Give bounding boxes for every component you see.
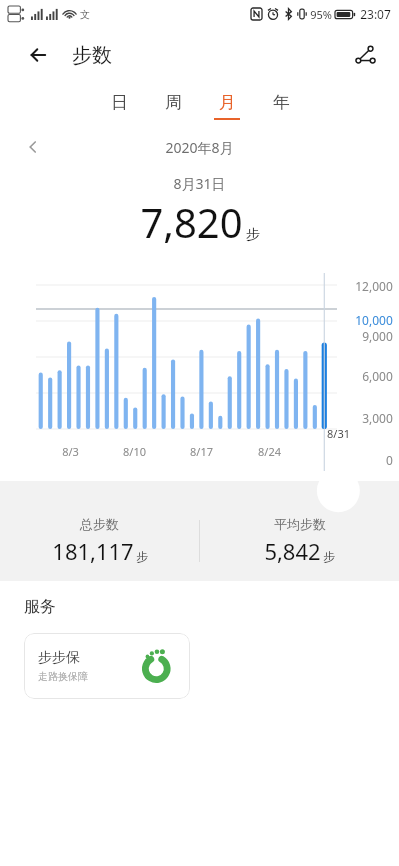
staticText: 6,000 <box>362 368 393 384</box>
staticText: 5,842 <box>264 536 321 566</box>
staticText: 步 <box>323 549 335 564</box>
staticText: 8/24 <box>258 444 281 459</box>
staticText: 181,117 <box>52 536 134 566</box>
button[interactable]: Previous month <box>16 130 50 164</box>
button[interactable]: 平均步数 <box>200 516 399 566</box>
staticText: 服务 <box>24 597 56 617</box>
staticText: 步 <box>246 226 260 244</box>
staticText: 步数 <box>72 43 112 68</box>
staticText: 12,000 <box>355 278 393 294</box>
staticText: 步步保 <box>38 649 80 667</box>
staticText: 8/17 <box>190 444 213 459</box>
staticText: 走路换保障 <box>38 670 88 683</box>
staticText: 9,000 <box>362 328 393 344</box>
staticText: 8月31日 <box>173 174 226 193</box>
staticText: 95% <box>310 7 332 22</box>
button[interactable]: Share <box>343 33 387 77</box>
staticText: 月 <box>219 92 236 113</box>
button[interactable]: 日 <box>92 84 146 128</box>
staticText: 文 <box>80 8 90 21</box>
staticText: 8/3 <box>62 444 79 459</box>
staticText: 2020年8月 <box>165 138 234 157</box>
button[interactable]: 年 <box>254 84 308 128</box>
button[interactable]: 步步保 <box>24 633 190 699</box>
staticText: 平均步数 <box>274 516 326 532</box>
staticText: 周 <box>165 92 182 113</box>
staticText: 7,820 <box>140 195 243 249</box>
staticText: 10,000 <box>355 312 393 328</box>
button[interactable]: 月 <box>200 84 254 128</box>
staticText: 8/31 <box>327 426 350 441</box>
staticText: 总步数 <box>80 516 119 532</box>
staticText: 年 <box>273 92 290 113</box>
staticText: 3,000 <box>362 410 393 426</box>
button[interactable]: Back <box>14 33 58 77</box>
button[interactable]: 总步数 <box>0 516 199 566</box>
staticText: 0 <box>386 452 393 468</box>
button[interactable]: 周 <box>146 84 200 128</box>
staticText: 日 <box>111 92 128 113</box>
staticText: 23:07 <box>360 6 391 22</box>
staticText: 8/10 <box>123 444 146 459</box>
staticText: 步 <box>136 549 148 564</box>
